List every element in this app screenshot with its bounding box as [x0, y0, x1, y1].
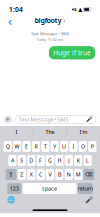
staticText: J — [68, 157, 69, 164]
button[interactable]: F — [36, 155, 45, 166]
button[interactable]: Q — [4, 141, 12, 152]
staticText: 🎤 — [86, 116, 93, 123]
staticText: H — [57, 157, 61, 164]
button[interactable]: Delete — [83, 169, 94, 180]
staticText: Z — [20, 171, 23, 178]
button[interactable]: I — [0, 126, 33, 138]
staticText: 🎤 — [85, 196, 93, 204]
button[interactable]: I — [69, 141, 78, 152]
button[interactable]: S — [18, 155, 26, 166]
staticText: W — [15, 143, 20, 150]
button[interactable]: B — [55, 169, 63, 180]
button[interactable]: X — [27, 169, 35, 180]
staticText: 123 — [10, 185, 19, 192]
button[interactable]: Shift — [5, 169, 16, 180]
button[interactable]: C — [36, 169, 45, 180]
staticText: ⌫ — [85, 171, 93, 178]
staticText: P — [91, 143, 94, 150]
staticText: I — [72, 143, 74, 150]
button[interactable]: J — [65, 155, 73, 166]
staticText: Today 11:02 am — [36, 37, 63, 42]
button[interactable]: D — [27, 155, 35, 166]
button[interactable]: H — [55, 155, 63, 166]
button[interactable]: M — [74, 169, 82, 180]
staticText: Q — [6, 143, 10, 150]
staticText: Text Message • SMS — [31, 31, 69, 36]
staticText: K — [77, 157, 80, 164]
staticText: I'm — [79, 128, 87, 136]
staticText: G — [48, 157, 52, 164]
button[interactable]: Add attachment — [4, 114, 12, 125]
staticText: U — [62, 143, 66, 150]
staticText: ⇧ — [8, 171, 14, 178]
button[interactable]: W — [13, 141, 21, 152]
staticText: + — [5, 114, 10, 125]
staticText: T — [44, 143, 47, 150]
button[interactable]: G — [46, 155, 54, 166]
staticText: B — [58, 171, 61, 178]
staticText: 🌐 — [7, 196, 15, 204]
staticText: F — [39, 157, 42, 164]
staticText: V — [48, 171, 51, 178]
staticText: S — [20, 157, 23, 164]
button[interactable]: R — [32, 141, 40, 152]
staticText: C — [39, 171, 42, 178]
button[interactable]: U — [60, 141, 68, 152]
button[interactable]: N — [65, 169, 73, 180]
button[interactable]: Z — [18, 169, 26, 180]
staticText: E — [25, 143, 28, 150]
staticText: › — [63, 16, 65, 25]
button[interactable]: L — [83, 155, 92, 166]
staticText: Text Message • SMS — [18, 116, 68, 123]
staticText: bigfooty — [35, 16, 62, 25]
staticText: space — [42, 185, 57, 192]
staticText: ‹ — [8, 12, 12, 29]
staticText: Y — [53, 143, 56, 150]
staticText: L — [86, 157, 89, 164]
button[interactable]: space — [22, 183, 76, 194]
button[interactable]: P — [88, 141, 96, 152]
button[interactable]: Switch keyboard — [6, 195, 16, 205]
button[interactable]: O — [79, 141, 87, 152]
button[interactable]: K — [74, 155, 82, 166]
staticText: The — [45, 128, 54, 136]
staticText: D — [29, 157, 33, 164]
staticText: I — [15, 128, 17, 136]
staticText: N — [67, 171, 71, 178]
button[interactable]: Dictate — [84, 195, 94, 205]
button[interactable]: Back — [4, 15, 16, 26]
button[interactable]: 123 — [7, 183, 21, 194]
staticText: return — [78, 185, 93, 192]
staticText: R — [34, 143, 37, 150]
button[interactable]: I'm — [67, 126, 100, 138]
staticText: O — [81, 143, 85, 150]
staticText: M — [76, 171, 81, 178]
button[interactable]: The — [33, 126, 66, 138]
staticText: ▲ — [78, 6, 82, 13]
button[interactable]: A — [8, 155, 16, 166]
button[interactable]: return — [78, 183, 93, 194]
button[interactable]: T — [41, 141, 49, 152]
staticText: Huge if true — [53, 48, 91, 57]
button[interactable]: V — [46, 169, 54, 180]
staticText: A — [11, 157, 14, 164]
button[interactable]: bigfooty — [35, 16, 65, 25]
button[interactable]: Y — [51, 141, 59, 152]
staticText: X — [30, 171, 33, 178]
staticText: 1:04 — [9, 5, 23, 14]
button[interactable]: E — [22, 141, 31, 152]
